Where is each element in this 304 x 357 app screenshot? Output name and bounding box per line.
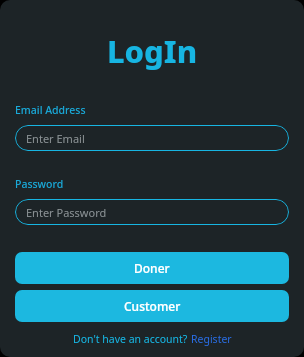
button[interactable]: Don't have an account? xyxy=(15,332,289,346)
button[interactable]: Enter Email xyxy=(15,125,289,151)
staticText: Register xyxy=(191,332,232,346)
staticText: Enter Email xyxy=(26,131,85,146)
staticText: Customer xyxy=(124,298,181,314)
staticText: Email Address xyxy=(15,103,86,117)
staticText: Password xyxy=(15,177,64,191)
staticText: Enter Password xyxy=(26,205,107,220)
staticText: LogIn xyxy=(15,30,289,72)
staticText: Doner xyxy=(134,260,170,276)
button[interactable]: Customer xyxy=(15,290,289,322)
button[interactable]: Enter Password xyxy=(15,199,289,225)
staticText: Don't have an account? xyxy=(73,332,191,346)
button[interactable]: Doner xyxy=(15,252,289,284)
